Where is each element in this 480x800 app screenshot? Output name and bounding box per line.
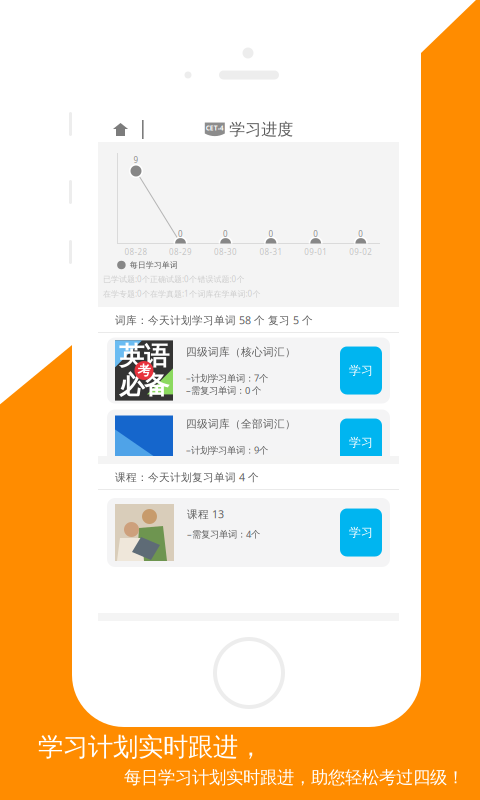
staticText: 学习计划实时跟进，	[38, 732, 263, 763]
staticText: 四级词库（核心词汇）	[186, 345, 296, 359]
staticText: 每日学习计划实时跟进，助您轻松考过四级！	[124, 767, 464, 788]
staticText: 错误试题:0个	[197, 274, 244, 284]
staticText: –需复习单词：0 个	[186, 286, 261, 298]
staticText: 9	[133, 155, 138, 165]
staticText: 在学真题:1个	[150, 288, 197, 299]
staticText: 在学专题:0个	[103, 288, 150, 299]
staticText: 09-01	[304, 247, 327, 257]
staticText: 学习	[349, 363, 373, 378]
staticText: –需复习单词：0 个	[186, 384, 261, 396]
button[interactable]: 四级词库（全部词汇）	[98, 409, 399, 475]
staticText: 正确试题:0个	[150, 274, 197, 284]
staticText: –计划学习单词：5个	[186, 274, 268, 286]
staticText: 08-31	[259, 247, 282, 257]
staticText: 学习	[349, 435, 373, 450]
staticText: –计划学习单词：9个	[186, 444, 268, 456]
button[interactable]: 英语	[98, 337, 399, 403]
staticText: 08-30	[214, 247, 237, 257]
button[interactable]: Home	[98, 117, 142, 142]
staticText: –计划学习单词：7个	[186, 372, 268, 384]
staticText: 词库：今天计划学习单词 58 个 复习 5 个	[115, 313, 313, 327]
staticText: 四级词库（全部词汇）	[186, 417, 296, 431]
staticText: 每日学习单词	[130, 260, 178, 270]
staticText: 词库在学单词:0个	[197, 288, 260, 299]
staticText: 09-02	[349, 247, 372, 257]
staticText: 课程：今天计划复习单词 4 个	[115, 470, 259, 484]
button[interactable]: 四级词库（基础词汇）	[98, 239, 399, 305]
staticText: 课程 13	[187, 507, 224, 521]
staticText: 08-29	[169, 247, 192, 257]
staticText: 必备	[119, 369, 169, 401]
staticText: 0	[178, 229, 183, 239]
staticText: 考	[137, 362, 150, 379]
staticText: 08-28	[124, 247, 147, 257]
staticText: CET-4	[206, 124, 224, 132]
staticText: 0	[313, 229, 318, 239]
staticText: 四级词库（基础词汇）	[186, 247, 296, 261]
staticText: 学习进度	[229, 120, 293, 139]
staticText: 0	[223, 229, 228, 239]
staticText: 已学试题:0个	[103, 274, 150, 284]
staticText: 0	[358, 229, 363, 239]
staticText: –需复习单词：4个	[187, 528, 260, 540]
button[interactable]: 课程 13	[98, 490, 399, 567]
staticText: 学习	[349, 525, 373, 540]
staticText: 英语	[119, 340, 169, 371]
staticText: 0	[268, 229, 273, 239]
staticText: –需复习单词：0 个	[186, 456, 261, 468]
